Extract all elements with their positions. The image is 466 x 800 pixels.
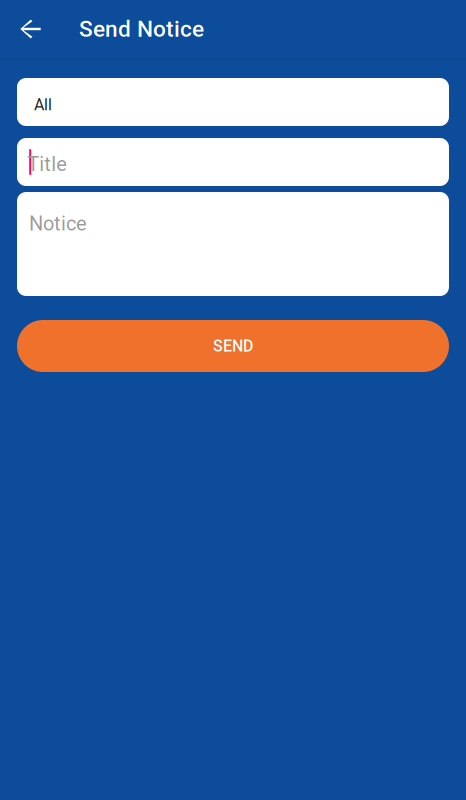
button[interactable]: Back	[0, 0, 79, 58]
staticText: All	[34, 95, 52, 114]
staticText: Title	[27, 152, 67, 176]
staticText: Notice	[29, 212, 87, 235]
button[interactable]: All	[17, 78, 449, 126]
button[interactable]: Notice	[17, 192, 449, 296]
staticText: SEND	[213, 337, 253, 355]
button[interactable]: SEND	[17, 320, 449, 372]
staticText: Send Notice	[79, 16, 204, 42]
button[interactable]: Title	[17, 138, 449, 186]
